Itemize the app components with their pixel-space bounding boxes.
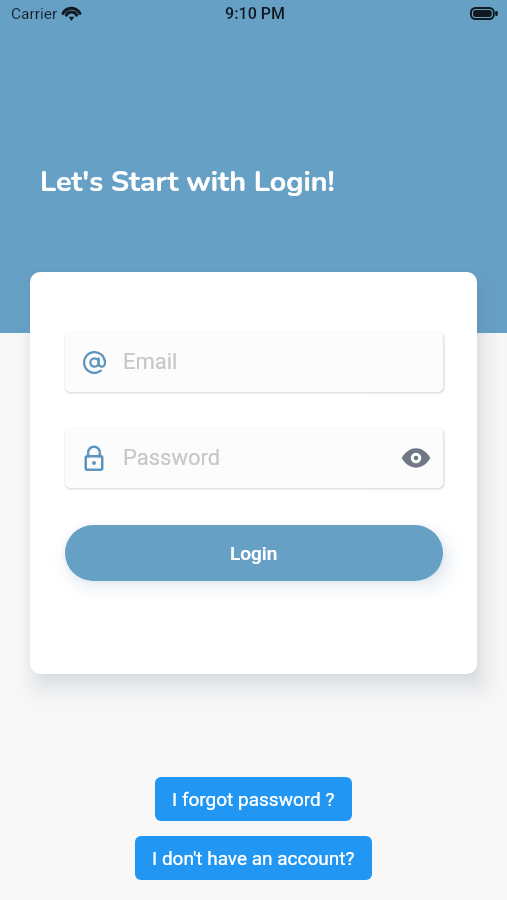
staticText: Password: [123, 445, 221, 471]
staticText: Login: [230, 542, 278, 564]
staticText: I don't have an account?: [152, 847, 355, 869]
staticText: Let's Start with Login!: [40, 162, 335, 201]
button[interactable]: Login: [65, 525, 443, 581]
button[interactable]: Show password: [395, 437, 437, 479]
button[interactable]: Password: [65, 428, 443, 488]
staticText: Carrier: [11, 5, 58, 23]
button[interactable]: Email: [65, 332, 443, 392]
staticText: I forgot password ?: [172, 788, 335, 810]
button[interactable]: I forgot password ?: [155, 777, 352, 821]
staticText: Email: [123, 349, 178, 375]
button[interactable]: I don't have an account?: [135, 836, 372, 880]
staticText: 9:10 PM: [225, 4, 286, 23]
